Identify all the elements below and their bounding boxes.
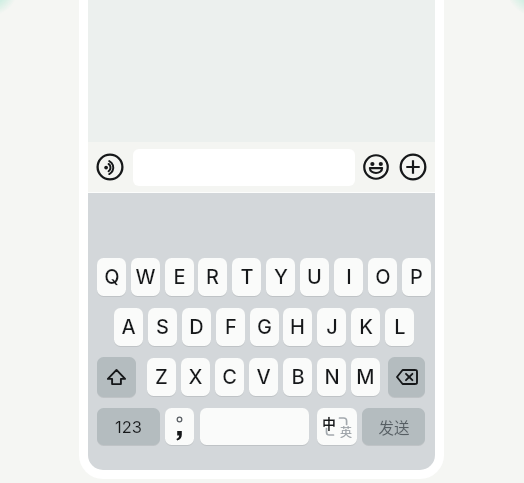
staticText: R [206,265,219,289]
button[interactable]: R [198,258,227,296]
button[interactable]: Emoji [361,152,391,182]
button[interactable]: D [182,308,211,346]
button[interactable]: Comma [165,408,194,445]
staticText: Y [274,265,288,289]
button[interactable]: Switch input language [317,408,357,445]
button[interactable]: S [148,308,177,346]
button[interactable]: 发送 [362,408,425,445]
staticText: 英 [340,423,353,440]
staticText: G [257,315,272,339]
staticText: P [410,265,423,289]
staticText: V [256,365,271,389]
button[interactable]: P [402,258,431,296]
staticText: N [324,365,340,389]
staticText: L [394,315,406,339]
button[interactable]: Z [147,358,176,396]
staticText: T [240,265,254,289]
button[interactable]: I [334,258,363,296]
button[interactable]: T [232,258,261,296]
button[interactable]: N [317,358,346,396]
button[interactable]: B [283,358,312,396]
button[interactable]: Shift [97,357,136,397]
staticText: S [156,315,169,339]
staticText: M [356,365,375,389]
staticText: C [222,365,237,389]
button[interactable]: More options [398,152,428,182]
button[interactable]: X [181,358,210,396]
button[interactable]: U [300,258,329,296]
button[interactable]: O [368,258,397,296]
button[interactable]: Voice input [95,152,125,182]
staticText: I [346,265,352,289]
button[interactable]: E [165,258,194,296]
button[interactable]: C [215,358,244,396]
staticText: W [135,265,156,289]
staticText: Z [155,365,168,389]
staticText: E [173,265,186,289]
button[interactable]: H [283,308,312,346]
button[interactable]: 123 [97,408,160,445]
staticText: D [189,315,204,339]
button[interactable]: M [351,358,380,396]
staticText: B [291,365,305,389]
staticText: A [121,315,136,339]
button[interactable]: Backspace [388,357,425,397]
button[interactable]: L [385,308,414,346]
staticText: F [225,315,237,339]
staticText: 中 [322,413,336,433]
button[interactable]: G [250,308,279,346]
button[interactable]: Y [266,258,295,296]
button[interactable]: F [216,308,245,346]
staticText: U [307,265,322,289]
button[interactable]: Space [200,408,309,445]
staticText: 发送 [378,416,410,438]
button[interactable]: J [317,308,346,346]
staticText: X [188,365,203,389]
button[interactable]: K [351,308,380,346]
staticText: O [375,265,391,289]
staticText: 123 [115,417,142,437]
button[interactable]: A [114,308,143,346]
staticText: K [359,315,373,339]
staticText: Q [104,265,120,289]
button[interactable]: W [131,258,160,296]
staticText: H [290,315,305,339]
button[interactable]: Q [97,258,126,296]
button[interactable]: V [249,358,278,396]
staticText: J [326,315,338,339]
